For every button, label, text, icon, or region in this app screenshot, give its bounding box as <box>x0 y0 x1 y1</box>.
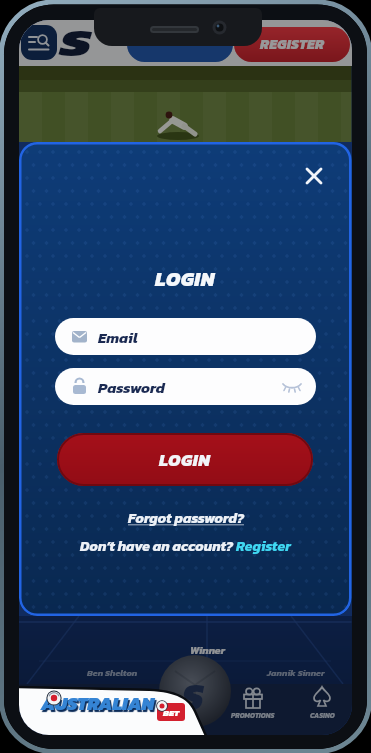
button[interactable] <box>21 25 57 60</box>
staticText: Ben Shelton <box>87 666 138 679</box>
staticText: CASINO <box>310 710 335 720</box>
button[interactable]: Email <box>55 318 316 355</box>
staticText: Don’t have an account? <box>80 536 236 557</box>
staticText: LOGIN <box>155 264 216 294</box>
staticText: S <box>182 668 204 725</box>
button[interactable]: Register <box>236 536 291 557</box>
button[interactable] <box>299 161 329 191</box>
button[interactable]: PROMOTIONS <box>223 684 283 734</box>
button[interactable]: Password <box>55 368 316 405</box>
button[interactable]: Forgot password? <box>128 508 244 529</box>
staticText: AUSTRALIAN <box>41 690 155 718</box>
button[interactable] <box>165 662 225 722</box>
button[interactable]: LOGIN <box>57 433 313 486</box>
staticText: Password <box>98 376 165 398</box>
staticText: LOGIN <box>159 447 211 472</box>
button[interactable] <box>127 27 233 62</box>
button[interactable]: CASINO <box>295 684 349 734</box>
staticText: S <box>60 20 92 71</box>
staticText: REGISTER <box>260 34 325 55</box>
button[interactable]: REGISTER <box>234 27 350 62</box>
staticText: Email <box>98 326 138 348</box>
staticText: BET <box>163 706 180 719</box>
staticText: Jannik Sinner <box>267 666 325 679</box>
staticText: PROMOTIONS <box>231 710 275 720</box>
staticText: Winner <box>190 642 225 658</box>
